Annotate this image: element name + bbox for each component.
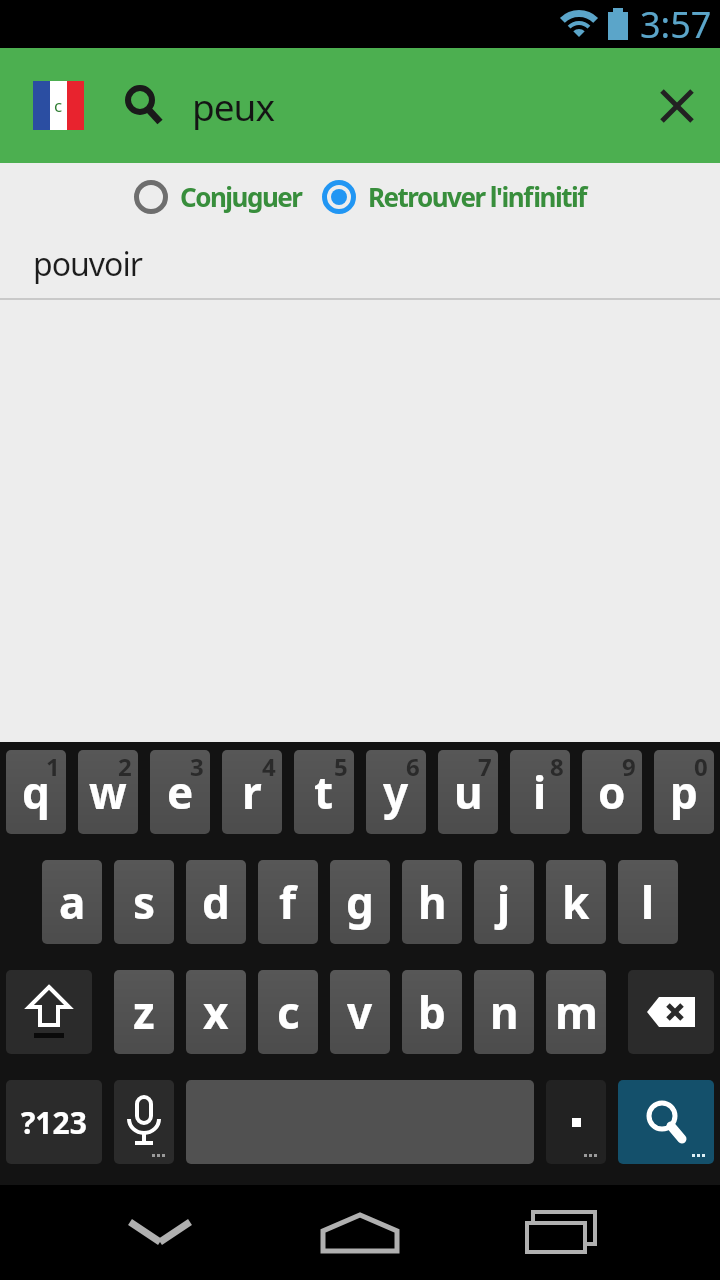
staticText: 0 xyxy=(694,750,708,783)
staticText: c xyxy=(54,94,63,117)
staticText: 4 xyxy=(262,750,276,783)
staticText: s xyxy=(133,872,156,932)
staticText: l xyxy=(641,872,655,932)
button[interactable]: g xyxy=(330,860,390,944)
staticText: z xyxy=(133,982,155,1042)
staticText: a xyxy=(59,872,86,932)
staticText: t xyxy=(314,762,334,822)
staticText: 5 xyxy=(334,750,348,783)
button[interactable]: i xyxy=(510,750,570,834)
button[interactable]: l xyxy=(618,860,678,944)
button[interactable] xyxy=(546,1080,606,1164)
staticText: ?123 xyxy=(21,1102,87,1143)
button[interactable]: pouvoir xyxy=(0,230,720,300)
staticText: k xyxy=(562,872,590,932)
button[interactable]: w xyxy=(78,750,138,834)
button[interactable]: s xyxy=(114,860,174,944)
button[interactable] xyxy=(115,1188,205,1278)
button[interactable] xyxy=(628,970,714,1054)
button[interactable]: j xyxy=(474,860,534,944)
button[interactable]: peux xyxy=(192,81,275,131)
staticText: c xyxy=(277,982,300,1042)
button[interactable]: b xyxy=(402,970,462,1054)
staticText: 8 xyxy=(550,750,564,783)
staticText: Retrouver l'infinitif xyxy=(368,179,586,214)
staticText: f xyxy=(279,872,297,932)
staticText: x xyxy=(203,982,229,1042)
button[interactable]: f xyxy=(258,860,318,944)
staticText: 6 xyxy=(406,750,420,783)
staticText: q xyxy=(22,762,50,822)
staticText: 9 xyxy=(622,750,636,783)
staticText: b xyxy=(418,982,446,1042)
button[interactable]: n xyxy=(474,970,534,1054)
staticText: 7 xyxy=(478,750,492,783)
staticText: j xyxy=(497,872,511,932)
button[interactable]: c xyxy=(258,970,318,1054)
staticText: 2 xyxy=(118,750,132,783)
staticText: 3 xyxy=(190,750,204,783)
button[interactable] xyxy=(515,1188,605,1278)
button[interactable]: h xyxy=(402,860,462,944)
button[interactable]: k xyxy=(546,860,606,944)
staticText: 3:57 xyxy=(640,0,712,48)
button[interactable]: y xyxy=(366,750,426,834)
staticText: h xyxy=(418,872,447,932)
button[interactable] xyxy=(642,71,712,141)
button[interactable]: v xyxy=(330,970,390,1054)
button[interactable] xyxy=(6,970,92,1054)
staticText: p xyxy=(670,762,698,822)
staticText: m xyxy=(555,982,598,1042)
button[interactable]: c xyxy=(33,81,84,130)
staticText: e xyxy=(167,762,194,822)
staticText: r xyxy=(242,762,262,822)
button[interactable]: a xyxy=(42,860,102,944)
staticText: g xyxy=(346,872,374,932)
button[interactable] xyxy=(618,1080,714,1164)
staticText: i xyxy=(533,762,547,822)
button[interactable]: ?123 xyxy=(6,1080,102,1164)
button[interactable]: Conjuguer xyxy=(134,179,302,214)
staticText: w xyxy=(89,762,127,822)
staticText: n xyxy=(490,982,519,1042)
button[interactable]: d xyxy=(186,860,246,944)
button[interactable] xyxy=(114,1080,174,1164)
button[interactable]: x xyxy=(186,970,246,1054)
staticText: o xyxy=(598,762,626,822)
staticText: 1 xyxy=(46,750,60,783)
staticText: Conjuguer xyxy=(180,179,302,214)
staticText: v xyxy=(347,982,373,1042)
button[interactable]: q xyxy=(6,750,66,834)
button[interactable]: p xyxy=(654,750,714,834)
staticText: y xyxy=(383,762,409,822)
button[interactable]: t xyxy=(294,750,354,834)
staticText: pouvoir xyxy=(33,242,142,286)
staticText: u xyxy=(454,762,483,822)
staticText: d xyxy=(202,872,230,932)
button[interactable] xyxy=(315,1188,405,1278)
button[interactable]: z xyxy=(114,970,174,1054)
button[interactable]: m xyxy=(546,970,606,1054)
button[interactable]: e xyxy=(150,750,210,834)
button[interactable]: Retrouver l'infinitif xyxy=(322,179,586,214)
button[interactable]: r xyxy=(222,750,282,834)
button[interactable]: u xyxy=(438,750,498,834)
button[interactable]: o xyxy=(582,750,642,834)
